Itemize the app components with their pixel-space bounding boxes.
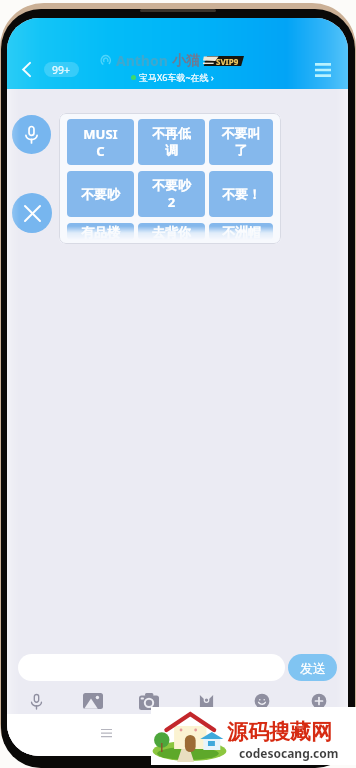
staticText: 宝马X6车载~在线 ›	[139, 71, 214, 83]
staticText: 去背你	[152, 224, 191, 240]
button[interactable]: Microphone	[12, 115, 51, 154]
staticText: SVIP9	[216, 56, 239, 66]
button[interactable]: Gift	[195, 690, 217, 712]
staticText: MUSIC	[80, 125, 121, 160]
staticText: 小猫	[172, 52, 200, 70]
button[interactable]: MUSIC	[67, 119, 134, 165]
button[interactable]: 不再低调	[138, 119, 205, 165]
button[interactable]: 去背你	[138, 223, 205, 240]
button[interactable]: Emoji	[251, 690, 273, 712]
button[interactable]: Back	[11, 54, 41, 84]
button[interactable]: 不要叫了	[209, 119, 273, 165]
staticText: 发送	[300, 660, 326, 676]
staticText: 99+	[52, 63, 71, 77]
button[interactable]: More	[308, 690, 330, 712]
staticText: 不要吵	[81, 186, 120, 202]
button[interactable]: 不要吵2	[138, 171, 205, 217]
button[interactable]: Close	[12, 193, 52, 233]
button[interactable]: 有品楼	[67, 223, 134, 240]
staticText: 不要吵2	[150, 177, 193, 211]
button[interactable]: 发送	[288, 654, 337, 681]
staticText: 不再低调	[150, 125, 193, 159]
button[interactable]: 不要！	[209, 171, 273, 217]
button[interactable]: Camera	[138, 690, 160, 712]
staticText: 不洲帽	[222, 224, 261, 240]
staticText: 不要！	[222, 186, 261, 202]
button[interactable]: Navigation menu	[101, 728, 112, 738]
button[interactable]: 不要吵	[67, 171, 134, 217]
staticText: 有品楼	[81, 224, 120, 240]
staticText: codesocang.com	[239, 745, 339, 761]
button[interactable]: 不洲帽	[209, 223, 273, 240]
button[interactable]: Voice message	[25, 690, 47, 712]
staticText: 源码搜藏网	[227, 719, 332, 745]
staticText: 不要叫了	[221, 125, 261, 159]
button[interactable]: Photo	[82, 690, 104, 712]
staticText: Anthon	[116, 51, 172, 70]
button[interactable]: Menu	[309, 56, 337, 84]
button[interactable]: 99+	[44, 62, 79, 77]
